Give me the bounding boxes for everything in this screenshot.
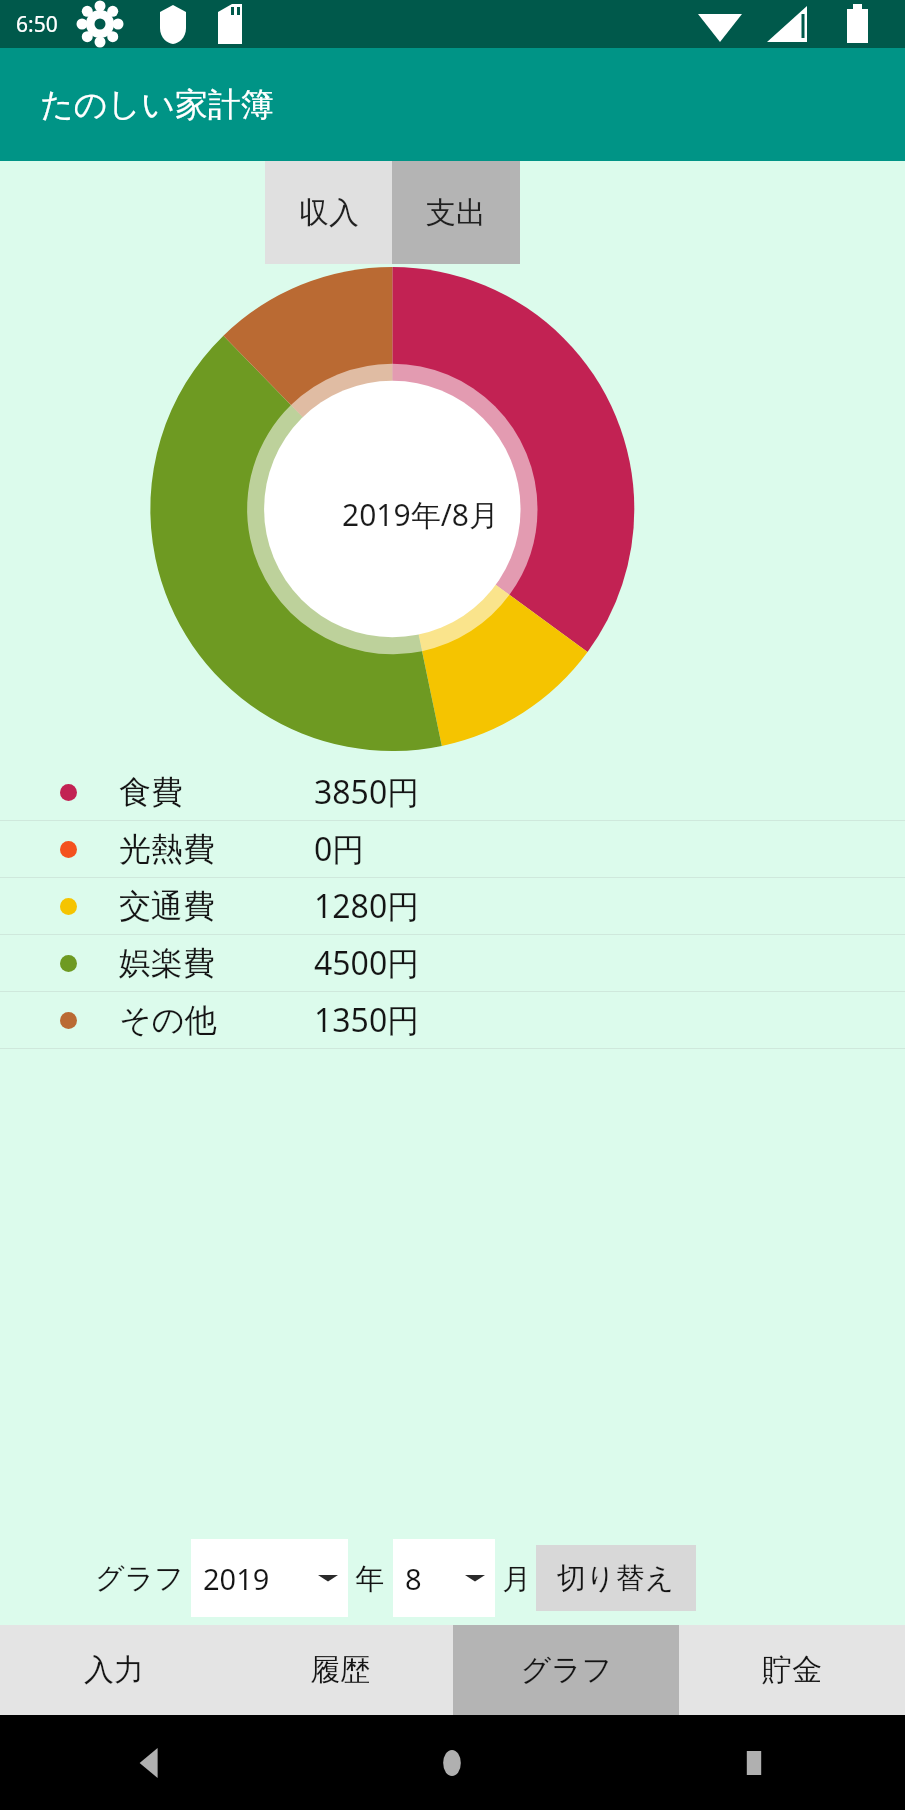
button[interactable]: Back [0,1715,301,1810]
staticText: 履歴 [310,1651,370,1689]
staticText: 4500円 [314,941,420,985]
button[interactable]: 娯楽費 [0,935,905,991]
staticText: 8 [405,1559,422,1598]
staticText: グラフ [520,1651,613,1689]
button[interactable]: 8 [393,1539,495,1617]
staticText: 収入 [299,194,359,232]
button[interactable]: 支出 [392,161,520,264]
button[interactable]: 収入 [265,161,392,264]
staticText: 6:50 [16,10,58,39]
staticText: 光熱費 [119,829,314,869]
staticText: グラフ [95,1560,185,1597]
staticText: 3850円 [314,770,420,814]
staticText: 2019 [203,1559,270,1598]
staticText: 年 [348,1558,393,1598]
staticText: 食費 [119,772,314,812]
staticText: 入力 [84,1651,144,1689]
button[interactable]: 交通費 [0,878,905,934]
button[interactable]: 切り替え [536,1545,696,1611]
button[interactable]: 光熱費 [0,821,905,877]
staticText: 支出 [426,194,486,232]
button[interactable]: 履歴 [227,1625,453,1715]
staticText: 切り替え [557,1560,675,1597]
button[interactable]: Recent apps [603,1715,905,1810]
button[interactable]: 2019 [191,1539,348,1617]
button[interactable]: Home [301,1715,603,1810]
button[interactable]: その他 [0,992,905,1048]
staticText: その他 [119,1000,314,1040]
staticText: 1280円 [314,884,420,928]
staticText: 2019年/8月 [342,494,499,535]
staticText: たのしい家計簿 [40,84,275,126]
button[interactable]: グラフ [453,1625,679,1715]
staticText: 交通費 [119,886,314,926]
staticText: 0円 [314,827,365,871]
button[interactable]: 貯金 [679,1625,905,1715]
staticText: 1350円 [314,998,420,1042]
button[interactable]: 入力 [0,1625,227,1715]
button[interactable]: 食費 [0,764,905,820]
staticText: 月 [495,1558,532,1598]
staticText: 貯金 [762,1651,822,1689]
staticText: 娯楽費 [119,943,314,983]
